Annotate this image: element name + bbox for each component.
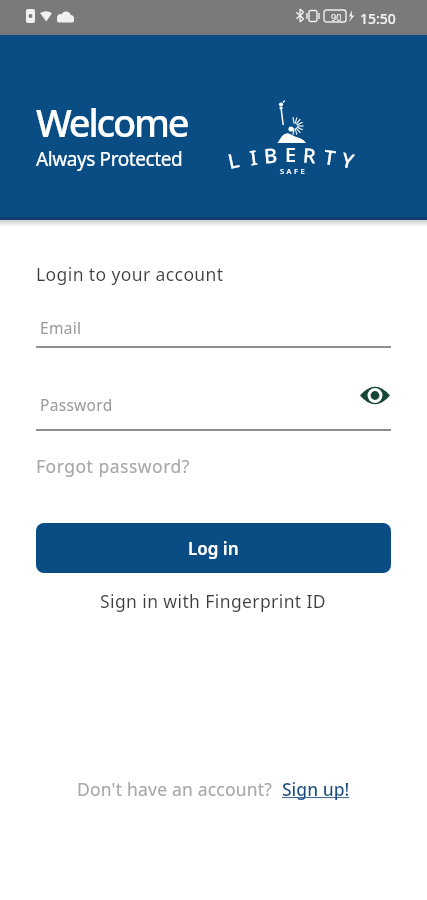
staticText: Always Protected xyxy=(36,146,183,172)
staticText: Password xyxy=(40,394,113,415)
button[interactable]: Log in xyxy=(36,523,391,573)
staticText: Login to your account xyxy=(36,262,224,286)
staticText: R xyxy=(302,142,317,169)
staticText: Forgot password? xyxy=(36,454,190,478)
button[interactable] xyxy=(354,379,396,411)
staticText: Log in xyxy=(188,537,239,560)
staticText: 90 xyxy=(331,11,342,23)
staticText: Y xyxy=(339,146,357,175)
staticText: E xyxy=(285,141,297,168)
button[interactable]: Forgot password? xyxy=(30,448,184,472)
staticText: L xyxy=(225,146,242,175)
staticText: Sign up! xyxy=(282,777,350,801)
staticText: T xyxy=(322,143,338,172)
staticText: I xyxy=(248,144,260,171)
staticText: Welcome xyxy=(36,96,188,148)
staticText: B xyxy=(263,141,279,169)
staticText: Don't have an account? xyxy=(77,777,282,801)
button[interactable]: Sign up! xyxy=(282,777,350,801)
button[interactable]: Email xyxy=(36,308,391,348)
button[interactable]: Sign in with Fingerprint ID xyxy=(100,583,327,607)
button[interactable]: Password xyxy=(36,391,391,431)
staticText: 15:50 xyxy=(360,9,396,28)
staticText: Sign in with Fingerprint ID xyxy=(100,589,327,613)
staticText: Email xyxy=(40,317,82,338)
staticText: SAFE xyxy=(280,166,308,176)
